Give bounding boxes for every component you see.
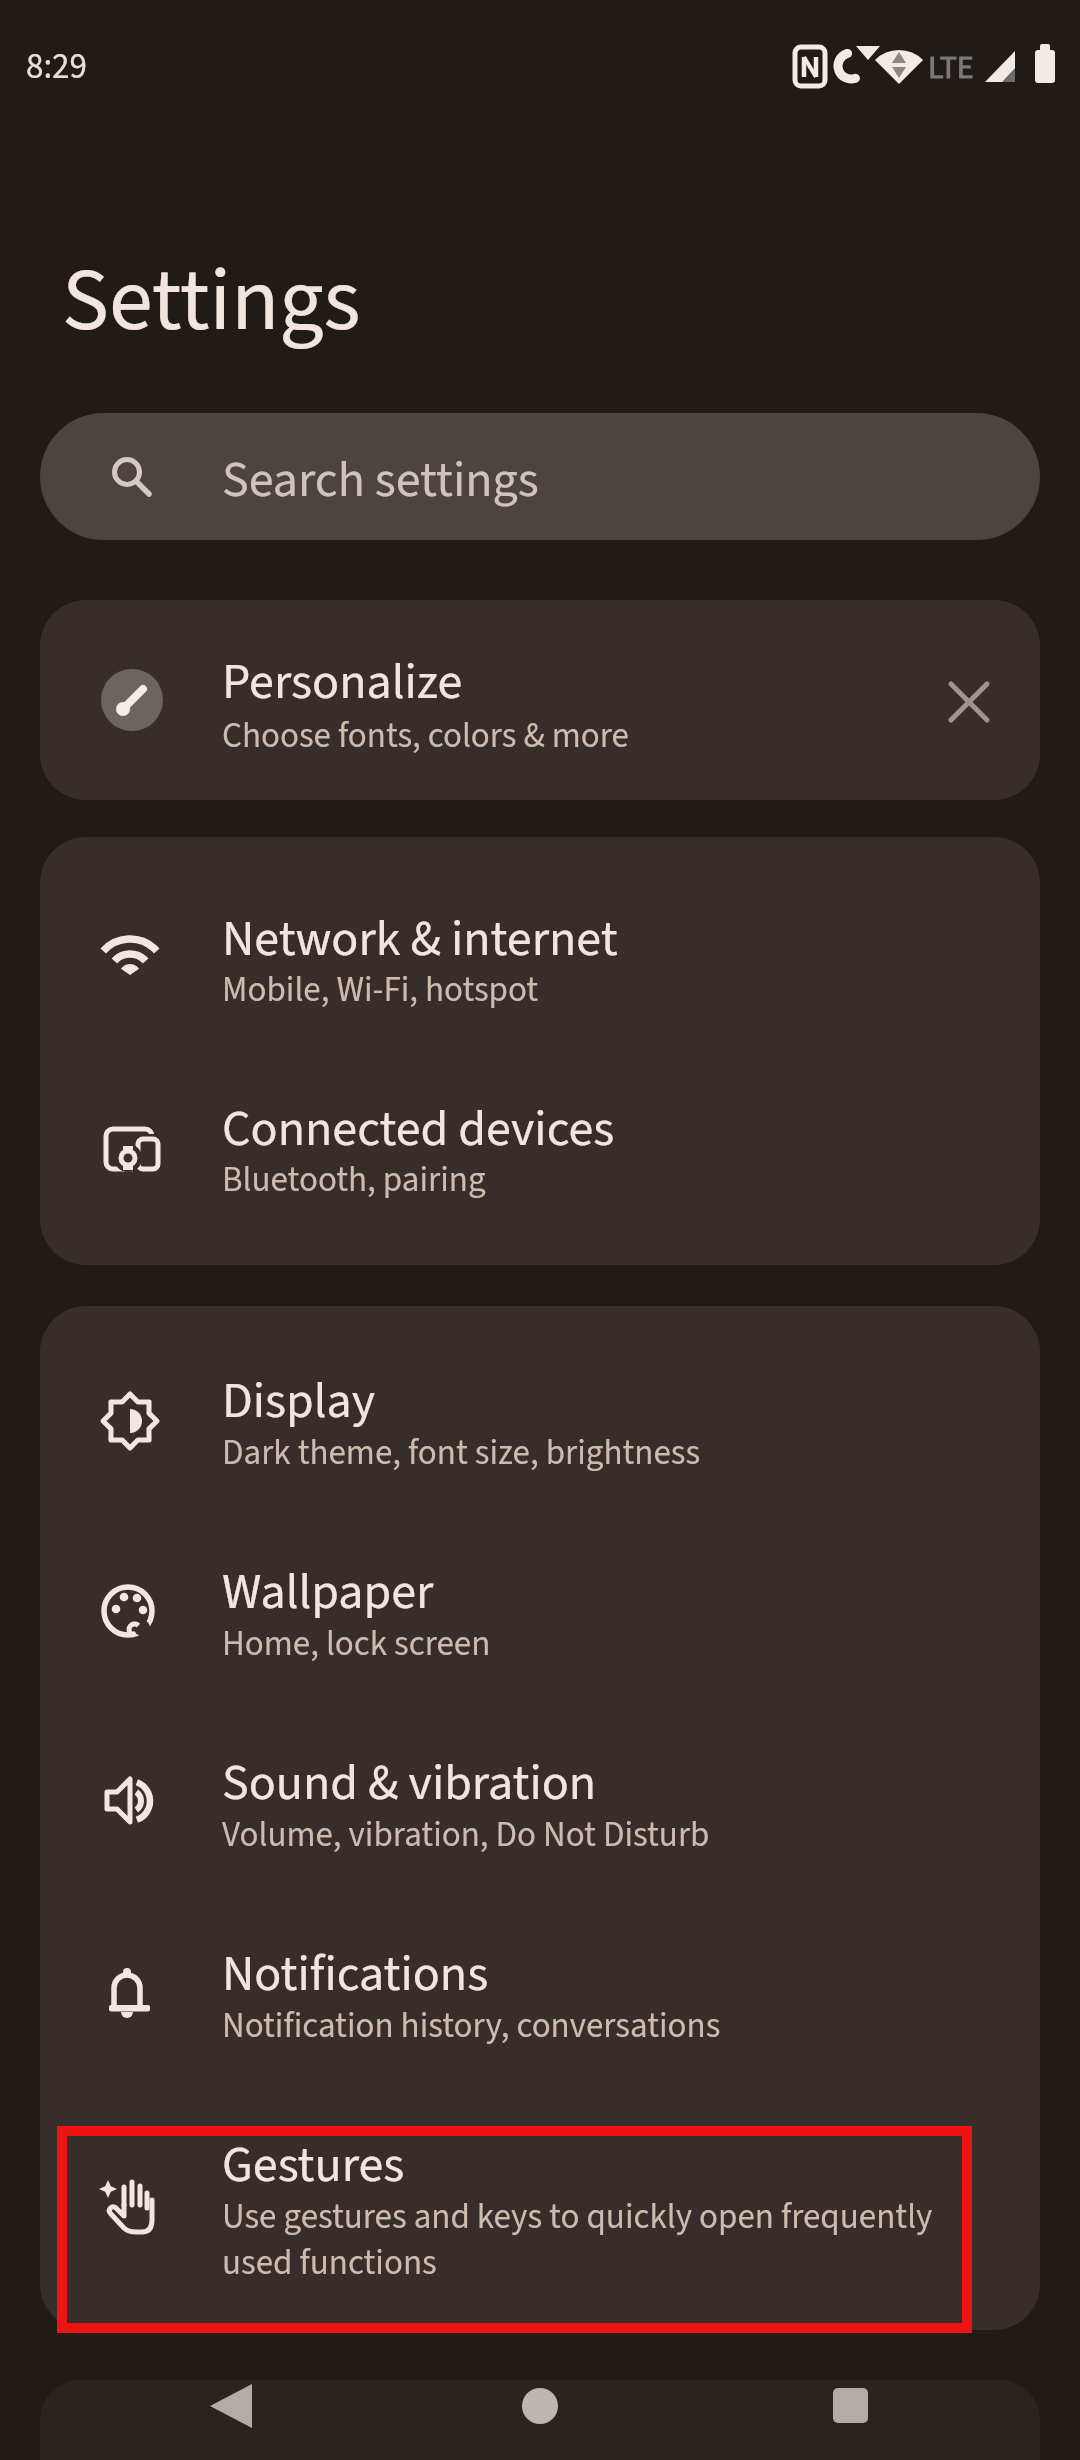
button[interactable]: Personalize — [40, 600, 1040, 800]
button[interactable] — [790, 2380, 910, 2460]
staticText: Home, lock screen — [222, 1619, 491, 1669]
staticText: Dark theme, font size, brightness — [222, 1428, 701, 1478]
staticText: Wallpaper — [222, 1557, 434, 1628]
button[interactable]: Sound & vibration — [40, 1688, 1040, 1879]
button[interactable]: Wallpaper — [40, 1497, 1040, 1688]
staticText: Settings — [62, 239, 361, 364]
staticText: Search settings — [222, 445, 539, 516]
staticText: Personalize — [222, 647, 463, 718]
staticText: Bluetooth, pairing — [222, 1155, 486, 1205]
staticText: Volume, vibration, Do Not Disturb — [222, 1810, 710, 1860]
button[interactable] — [170, 2380, 290, 2460]
button[interactable]: Display — [40, 1306, 1040, 1497]
staticText: Notification history, conversations — [222, 2001, 721, 2051]
staticText: Display — [222, 1366, 376, 1437]
staticText: Gestures — [222, 2130, 405, 2201]
staticText: Choose fonts, colors & more — [222, 711, 629, 761]
button[interactable]: Notifications — [40, 1879, 1040, 2070]
button[interactable]: Network & internet — [40, 837, 1040, 1051]
staticText: Connected devices — [222, 1094, 615, 1165]
button[interactable]: Gestures — [40, 2070, 1040, 2326]
button[interactable]: Search settings — [40, 413, 1040, 540]
staticText: 8:29 — [26, 42, 87, 92]
staticText: Sound & vibration — [222, 1748, 597, 1819]
staticText: Network & internet — [222, 904, 618, 975]
button[interactable] — [938, 671, 1000, 733]
button[interactable]: Connected devices — [40, 1051, 1040, 1265]
staticText: Use gestures and keys to quickly open fr… — [222, 2192, 992, 2288]
staticText: Notifications — [222, 1939, 489, 2010]
staticText: Mobile, Wi-Fi, hotspot — [222, 965, 539, 1015]
button[interactable] — [480, 2380, 600, 2460]
staticText: LTE — [928, 45, 974, 91]
